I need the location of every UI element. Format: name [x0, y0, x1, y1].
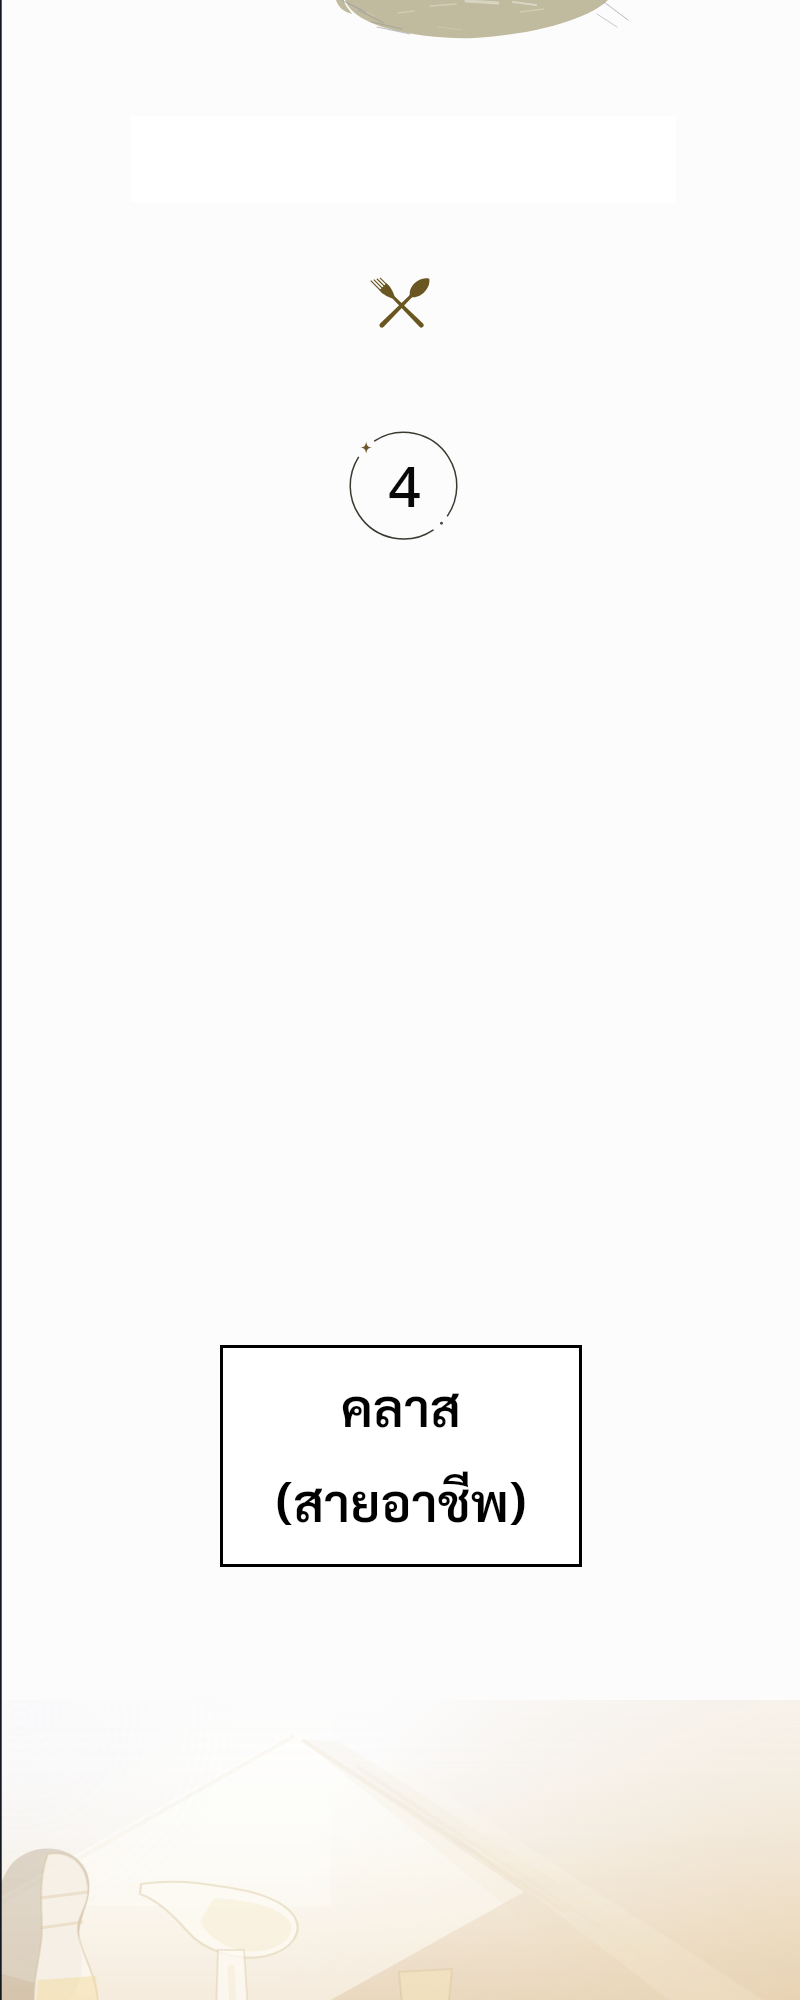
button[interactable]: 4 [348, 430, 460, 542]
staticText: (สายอาชีพ) [223, 1466, 579, 1546]
staticText: 4 [388, 446, 421, 524]
staticText: คลาส [223, 1371, 579, 1441]
button[interactable]: คลาส [220, 1345, 582, 1567]
button[interactable]: Restaurant [372, 272, 432, 332]
